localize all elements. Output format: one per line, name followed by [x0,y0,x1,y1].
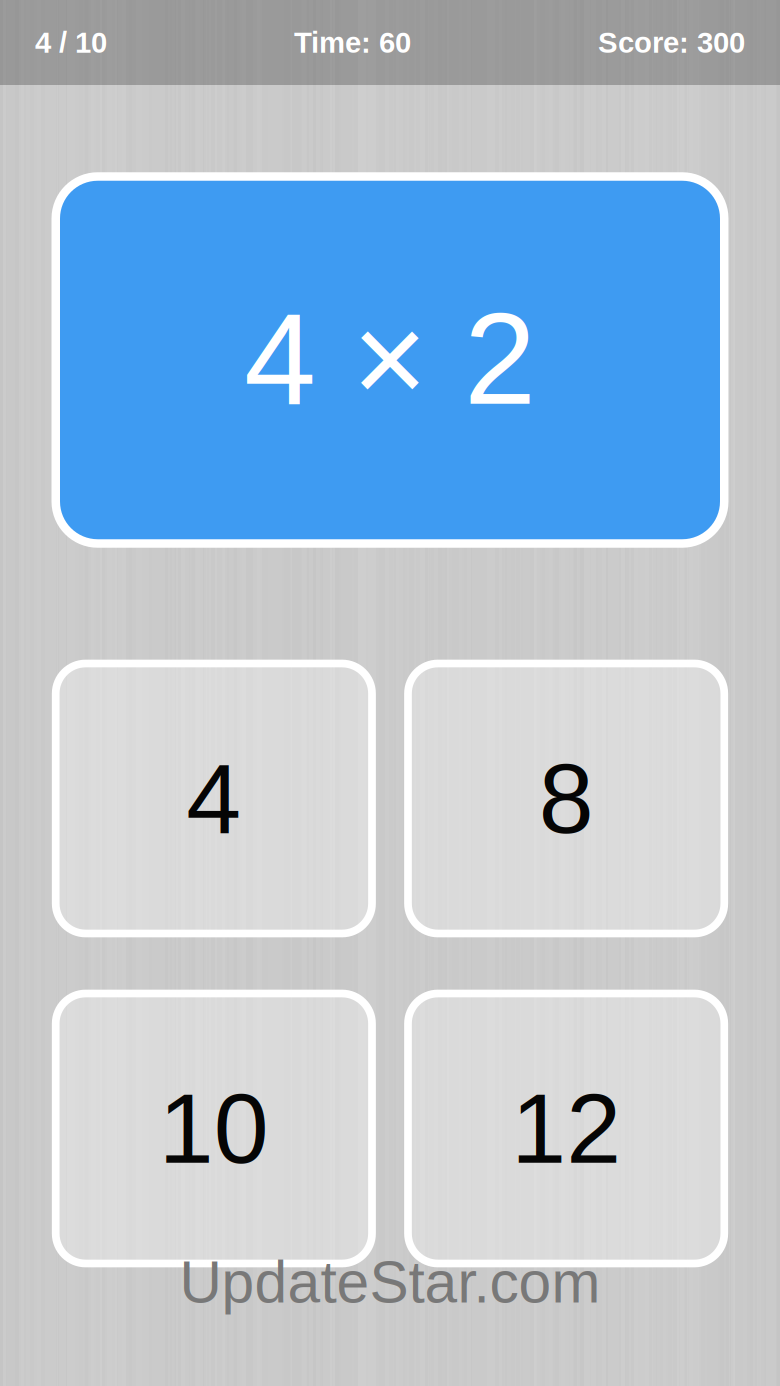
button[interactable]: 12 [408,993,724,1263]
staticText: Time: 60 [294,26,411,59]
staticText: 12 [511,1073,621,1184]
staticText: 4 / 10 [35,26,107,59]
staticText: 10 [159,1073,269,1184]
staticText: 8 [539,743,594,854]
staticText: 4 × 2 [244,287,536,431]
staticText: 4 [186,743,241,854]
button[interactable]: 4 [56,663,372,933]
staticText: UpdateStar.com [179,1249,600,1315]
staticText: Score: 300 [598,26,745,59]
button[interactable]: 10 [56,993,372,1263]
button[interactable]: 8 [408,663,724,933]
